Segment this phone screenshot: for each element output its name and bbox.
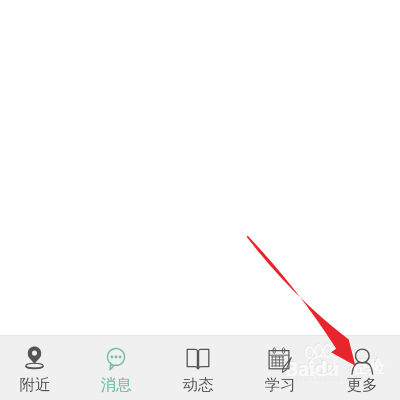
staticText: 更多 (338, 375, 386, 395)
button[interactable]: 学习 Study (239, 335, 321, 400)
staticText: 动态 (174, 375, 222, 395)
staticText: 学习 (256, 375, 304, 395)
staticText: Baidu (285, 356, 340, 382)
button[interactable]: 消息 Messages (75, 335, 157, 400)
staticText: 附近 (11, 375, 59, 395)
button[interactable]: 更多 More (321, 335, 400, 400)
staticText: Baidu (284, 355, 339, 381)
staticText: 消息 (92, 375, 140, 395)
button[interactable]: 附近 Nearby (0, 335, 75, 400)
button[interactable]: 动态 Feed (157, 335, 239, 400)
staticText: jingyan.baidu.com (283, 371, 361, 383)
staticText: 经验 (349, 356, 383, 377)
staticText: 经验 (350, 357, 384, 378)
